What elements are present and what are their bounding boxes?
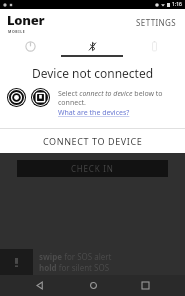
button[interactable]: CONNECT TO DEVICE <box>0 129 185 153</box>
staticText: hold for silent SOS <box>39 262 110 273</box>
button[interactable]: Device <box>7 88 26 107</box>
button[interactable]: Recents <box>132 275 158 296</box>
button[interactable]: Device <box>31 88 50 107</box>
staticText: Select connect to device below to connec… <box>58 89 179 107</box>
staticText: MOBILE <box>8 29 26 34</box>
staticText: CONNECT TO DEVICE <box>43 135 143 147</box>
button[interactable]: Home <box>80 275 106 296</box>
staticText: SETTINGS <box>136 17 177 28</box>
staticText: Loner <box>7 11 45 29</box>
staticText: 1:16 <box>172 1 182 8</box>
button[interactable]: Bluetooth disabled <box>61 35 123 57</box>
button[interactable]: Back <box>27 275 53 296</box>
button[interactable]: swipe for SOS alert <box>0 249 185 275</box>
button[interactable]: SETTINGS <box>128 11 185 34</box>
button[interactable]: Power <box>0 35 61 57</box>
button[interactable]: CHECK IN <box>17 160 168 177</box>
staticText: swipe for SOS alert <box>39 251 112 262</box>
staticText: Device not connected <box>8 65 177 81</box>
button[interactable]: What are the devices? <box>58 108 130 118</box>
staticText: CHECK IN <box>71 163 114 174</box>
